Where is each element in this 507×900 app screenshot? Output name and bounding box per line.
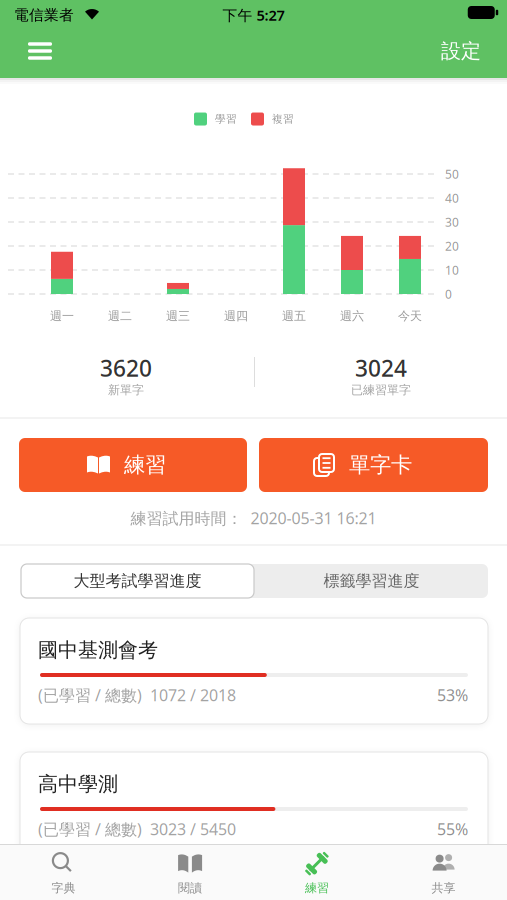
button[interactable]: 設定 xyxy=(426,33,496,69)
staticText: 20 xyxy=(445,238,459,254)
staticText: 練習 xyxy=(124,452,166,478)
staticText: 設定 xyxy=(441,39,481,63)
staticText: 週四 xyxy=(224,309,248,323)
staticText: 50 xyxy=(445,166,459,182)
staticText: 標籤學習進度 xyxy=(323,571,419,591)
staticText: 共享 xyxy=(432,881,456,895)
staticText: 複習 xyxy=(272,112,294,125)
staticText: 週三 xyxy=(166,309,190,323)
staticText: 已練習單字 xyxy=(351,383,411,397)
staticText: (已學習 / 總數) 1072 / 2018 xyxy=(38,684,236,706)
button[interactable]: 國中基測會考 xyxy=(20,618,488,724)
staticText: 單字卡 xyxy=(349,452,412,478)
staticText: 電信業者 xyxy=(14,6,74,24)
staticText: 53% xyxy=(437,684,468,706)
staticText: 3620 xyxy=(100,353,152,383)
staticText: 30 xyxy=(445,214,459,230)
staticText: 字典 xyxy=(51,881,75,895)
staticText: 下午 5:27 xyxy=(222,5,284,25)
button[interactable]: 練習 xyxy=(19,438,247,492)
staticText: 高中學測 xyxy=(38,772,118,796)
button[interactable]: 共享 xyxy=(399,847,489,899)
staticText: 0 xyxy=(445,286,452,302)
staticText: (已學習 / 總數) 3023 / 5450 xyxy=(38,818,236,840)
staticText: 週五 xyxy=(282,309,306,323)
staticText: 40 xyxy=(445,190,459,206)
button[interactable]: 閱讀 xyxy=(145,847,235,899)
staticText: 55% xyxy=(437,818,468,840)
button[interactable]: 標籤學習進度 xyxy=(255,564,488,598)
staticText: 學習 xyxy=(215,112,237,125)
staticText: 10 xyxy=(445,262,459,278)
staticText: 閱讀 xyxy=(178,881,202,895)
staticText: 週一 xyxy=(50,309,74,323)
button[interactable]: 練習 xyxy=(272,847,362,899)
button[interactable]: 字典 xyxy=(18,847,108,899)
staticText: 大型考試學習進度 xyxy=(73,571,201,591)
staticText: 3024 xyxy=(355,353,407,383)
staticText: 今天 xyxy=(398,309,422,323)
staticText: 練習 xyxy=(305,881,329,895)
staticText: 週六 xyxy=(340,309,364,323)
button[interactable]: 高中學測 xyxy=(20,752,488,858)
button[interactable]: 單字卡 xyxy=(259,438,488,492)
button[interactable]: 大型考試學習進度 xyxy=(21,564,254,598)
staticText: 國中基測會考 xyxy=(38,638,158,662)
button[interactable] xyxy=(18,33,62,69)
staticText: 練習試用時間： 2020-05-31 16:21 xyxy=(130,507,376,529)
staticText: 新單字 xyxy=(108,383,144,397)
staticText: 週二 xyxy=(108,309,132,323)
